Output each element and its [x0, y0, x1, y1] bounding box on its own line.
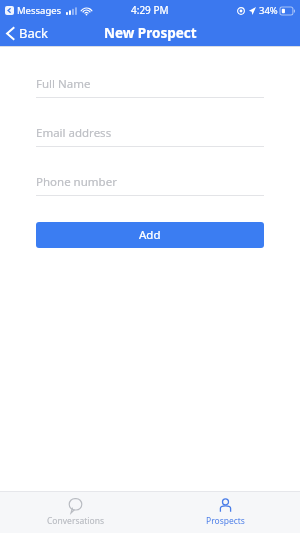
button[interactable]: Conversations — [0, 492, 150, 533]
staticText: Back — [19, 24, 48, 42]
button[interactable]: Full Name — [36, 75, 264, 98]
button[interactable]: Email address — [36, 124, 264, 147]
other: Conversations — [68, 498, 83, 513]
staticText: Messages — [17, 4, 62, 17]
staticText: Add — [139, 227, 161, 243]
staticText: Phone number — [36, 174, 117, 190]
staticText: 4:29 PM — [131, 3, 169, 17]
staticText: Email address — [36, 125, 112, 141]
staticText: Conversations — [47, 515, 104, 527]
staticText: New Prospect — [104, 24, 197, 42]
button[interactable]: Phone number — [36, 173, 264, 196]
staticText: Prospects — [206, 515, 245, 527]
button[interactable]: Prospects — [150, 492, 300, 533]
other: Prospects — [218, 498, 233, 513]
button[interactable]: Back — [0, 20, 56, 46]
staticText: Full Name — [36, 76, 91, 92]
button[interactable]: Add — [36, 222, 264, 248]
staticText: 34% — [259, 4, 278, 17]
